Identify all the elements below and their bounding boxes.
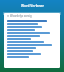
button[interactable] bbox=[4, 49, 60, 52]
button[interactable] bbox=[4, 52, 60, 55]
button[interactable] bbox=[4, 22, 60, 25]
staticText: Woordelys oorsig bbox=[10, 14, 32, 18]
button[interactable] bbox=[4, 46, 60, 49]
button[interactable] bbox=[4, 25, 60, 28]
button[interactable] bbox=[4, 40, 60, 43]
button[interactable] bbox=[4, 43, 60, 46]
button[interactable] bbox=[4, 28, 60, 31]
button[interactable] bbox=[4, 19, 60, 22]
button[interactable]: Menu bbox=[4, 13, 60, 18]
button[interactable] bbox=[4, 34, 60, 37]
button[interactable] bbox=[4, 55, 60, 58]
button[interactable] bbox=[4, 31, 60, 34]
staticText: Word Verlener bbox=[21, 4, 44, 8]
button[interactable]: Word Verlener bbox=[5, 4, 59, 8]
other: Menu bbox=[7, 15, 9, 17]
button[interactable] bbox=[4, 37, 60, 40]
